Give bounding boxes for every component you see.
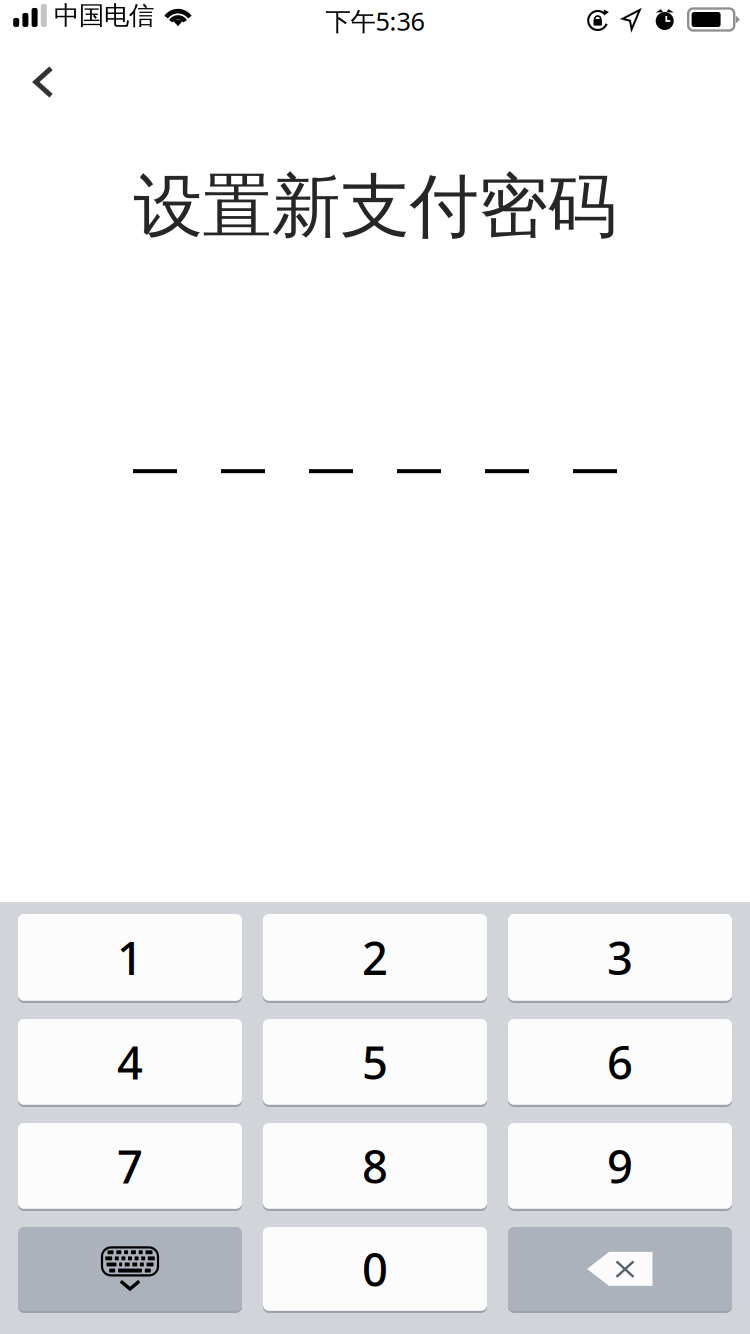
button[interactable]: 8 [263,1123,487,1211]
staticText: 6 [607,1032,633,1092]
staticText: 4 [117,1032,143,1092]
staticText: 9 [607,1136,633,1196]
button[interactable]: Hide keyboard [18,1227,242,1313]
staticText: 下午5:36 [325,4,424,38]
staticText: 1 [117,927,143,987]
staticText: 2 [362,927,388,987]
staticText: 5 [362,1032,388,1092]
button[interactable]: 2 [263,914,487,1003]
button[interactable]: 7 [18,1123,242,1211]
staticText: 8 [362,1136,388,1196]
button[interactable]: 5 [263,1019,487,1107]
staticText: 7 [117,1136,143,1196]
button[interactable]: Back [0,50,71,107]
staticText: 3 [607,927,633,987]
button[interactable]: 6 [508,1019,732,1107]
button[interactable]: 1 [18,914,242,1003]
staticText: 中国电信 [54,0,154,31]
button[interactable]: 0 [263,1227,487,1313]
staticText: 设置新支付密码 [133,164,616,249]
button[interactable]: 9 [508,1123,732,1211]
staticText: 0 [362,1239,388,1299]
button[interactable]: 3 [508,914,732,1003]
button[interactable]: Delete [508,1227,732,1313]
button[interactable]: 4 [18,1019,242,1107]
